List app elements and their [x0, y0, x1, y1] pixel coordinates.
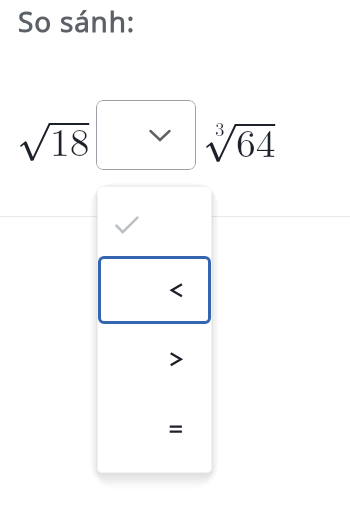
staticText: 64 — [236, 112, 276, 168]
button[interactable] — [97, 325, 212, 395]
staticText: 18 — [50, 111, 90, 167]
button[interactable] — [98, 256, 211, 324]
button[interactable] — [97, 396, 212, 466]
staticText: So sánh: — [18, 2, 135, 40]
button[interactable]: Open comparison operator selector — [96, 100, 196, 170]
staticText: 3 — [215, 115, 225, 142]
button[interactable]: Clear selection — [97, 186, 212, 255]
